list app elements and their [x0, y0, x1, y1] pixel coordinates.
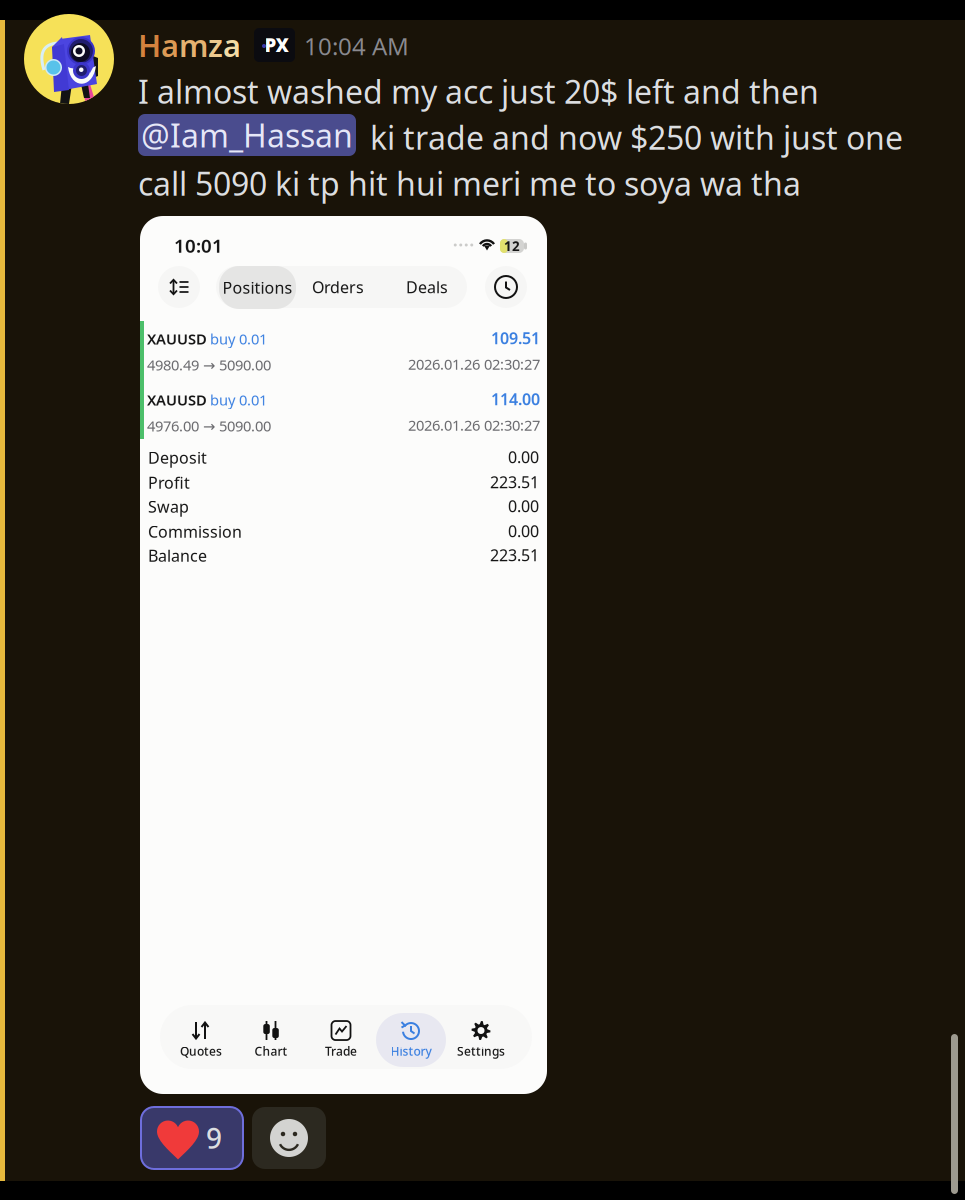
- staticText: Deals: [406, 276, 448, 298]
- staticText: 223.51: [490, 544, 539, 566]
- staticText: 2026.01.26 02:30:27: [408, 354, 540, 374]
- staticText: Profit: [148, 472, 190, 493]
- staticText: call 5090 ki tp hit hui meri me to soya …: [138, 162, 801, 204]
- button[interactable]: Trade: [306, 1005, 376, 1067]
- staticText: 12: [504, 237, 520, 255]
- staticText: Settings: [457, 1043, 505, 1059]
- button[interactable]: 9: [141, 1107, 243, 1169]
- staticText: Chart: [254, 1043, 287, 1059]
- staticText: m: [179, 25, 208, 65]
- button[interactable]: @Iam_Hassan: [138, 114, 356, 156]
- staticText: XAUUSD: [147, 329, 207, 348]
- staticText: 4976.00 → 5090.00: [147, 416, 271, 435]
- staticText: 10:01: [174, 233, 223, 258]
- staticText: 0.00: [508, 446, 539, 468]
- staticText: ki trade and now $250 with just one: [370, 116, 903, 158]
- staticText: 9: [206, 1119, 222, 1157]
- button[interactable]: History: [376, 1005, 446, 1067]
- staticText: Balance: [148, 545, 207, 566]
- button[interactable]: XAUUSD: [140, 321, 547, 378]
- button[interactable]: H: [138, 25, 241, 65]
- staticText: Positions: [222, 277, 292, 298]
- staticText: 10:04 AM: [304, 30, 409, 62]
- staticText: buy 0.01: [210, 390, 267, 409]
- staticText: XAUUSD: [147, 390, 207, 409]
- staticText: Swap: [148, 496, 189, 517]
- staticText: z: [208, 25, 223, 65]
- button[interactable]: History filter: [485, 266, 527, 308]
- button[interactable]: Orders: [304, 266, 372, 308]
- staticText: 0.00: [508, 520, 539, 542]
- button[interactable]: Hamza profile picture: [24, 14, 114, 104]
- staticText: History: [390, 1043, 431, 1059]
- staticText: H: [138, 25, 161, 65]
- staticText: a: [161, 25, 179, 65]
- staticText: 2026.01.26 02:30:27: [408, 415, 540, 435]
- staticText: 4980.49 → 5090.00: [147, 355, 271, 374]
- staticText: I almost washed my acc just 20$ left and…: [138, 70, 819, 112]
- staticText: Orders: [312, 276, 364, 298]
- button[interactable]: Add reaction: [252, 1107, 326, 1169]
- staticText: Commission: [148, 521, 242, 542]
- staticText: Quotes: [180, 1043, 222, 1059]
- button[interactable]: Sort positions: [158, 266, 200, 308]
- staticText: 109.51: [491, 327, 540, 349]
- button[interactable]: Chart: [236, 1005, 306, 1067]
- staticText: @Iam_Hassan: [141, 114, 353, 156]
- staticText: Trade: [325, 1043, 357, 1059]
- button[interactable]: XAUUSD: [140, 382, 547, 439]
- staticText: 114.00: [491, 388, 540, 410]
- staticText: PX: [264, 33, 288, 57]
- staticText: 223.51: [490, 471, 539, 493]
- button[interactable]: Positions: [219, 266, 296, 309]
- staticText: buy 0.01: [210, 329, 267, 348]
- button[interactable]: Deals: [393, 266, 461, 308]
- button[interactable]: Settings: [446, 1005, 516, 1067]
- staticText: 0.00: [508, 495, 539, 517]
- staticText: a: [223, 25, 241, 65]
- staticText: Deposit: [148, 447, 207, 468]
- button[interactable]: Quotes: [166, 1005, 236, 1067]
